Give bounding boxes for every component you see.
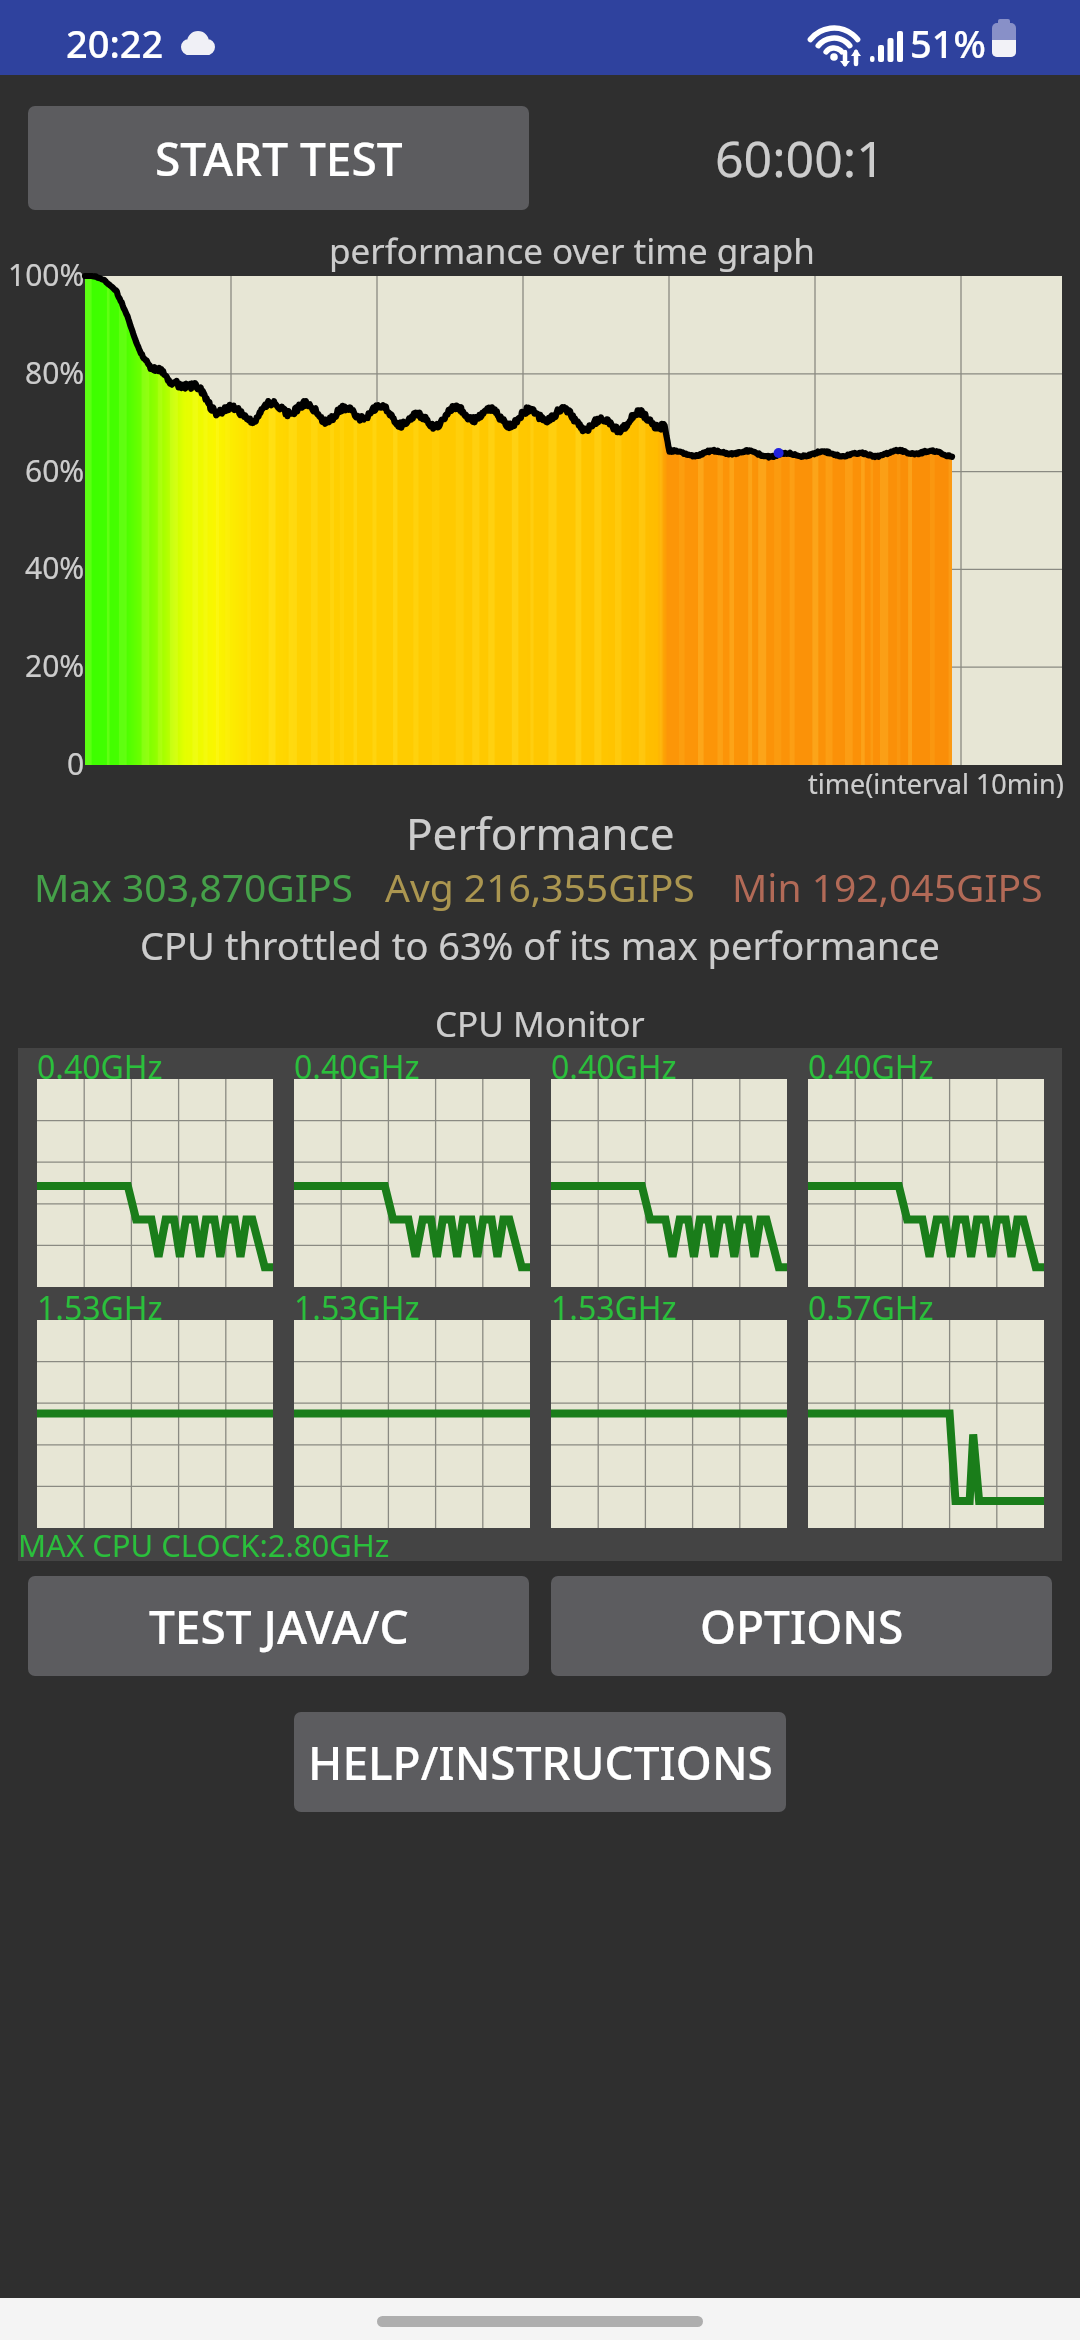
staticText: Max 303,870GIPS [34,860,353,913]
other: Mobile signal [870,24,904,66]
staticText: Performance [406,803,675,863]
staticText: time(interval 10min) [808,765,1064,802]
staticText: CPU throttled to 63% of its max performa… [140,919,940,971]
button[interactable]: Performance over time graph [85,276,1062,765]
other: Weather cloudy [178,34,218,58]
staticText: 1.53GHz [37,1286,163,1330]
staticText: 1.53GHz [294,1286,420,1330]
staticText: 0.57GHz [808,1286,934,1330]
button[interactable]: OPTIONS [551,1576,1052,1676]
staticText: 0.40GHz [294,1045,420,1089]
staticText: CPU Monitor [435,1000,645,1048]
staticText: OPTIONS [700,1595,904,1658]
staticText: MAX CPU CLOCK:2.80GHz [18,1524,390,1566]
button[interactable]: CPU Monitor per-core clocks [18,1048,1062,1561]
staticText: HELP/INSTRUCTIONS [308,1731,773,1794]
staticText: 1.53GHz [551,1286,677,1330]
staticText: 100% [8,254,85,295]
staticText: 51% [910,17,986,69]
staticText: 20:22 [66,17,164,69]
staticText: 0.40GHz [37,1045,163,1089]
staticText: performance over time graph [329,227,815,275]
staticText: 60% [25,450,85,491]
other: Wi-Fi [815,24,863,66]
staticText: 60:00:1 [715,124,885,192]
staticText: TEST JAVA/C [149,1595,409,1658]
staticText: Avg 216,355GIPS [385,860,695,913]
staticText: START TEST [155,127,403,190]
staticText: 80% [25,352,85,393]
staticText: 0.40GHz [551,1045,677,1089]
button[interactable]: HELP/INSTRUCTIONS [294,1712,786,1812]
staticText: 40% [25,547,85,588]
button[interactable]: START TEST [28,106,529,210]
staticText: Min 192,045GIPS [732,860,1043,913]
staticText: 0 [67,743,85,784]
other: Battery 51 percent [990,19,1024,61]
staticText: 20% [25,645,85,686]
button[interactable]: TEST JAVA/C [28,1576,529,1676]
staticText: 0.40GHz [808,1045,934,1089]
